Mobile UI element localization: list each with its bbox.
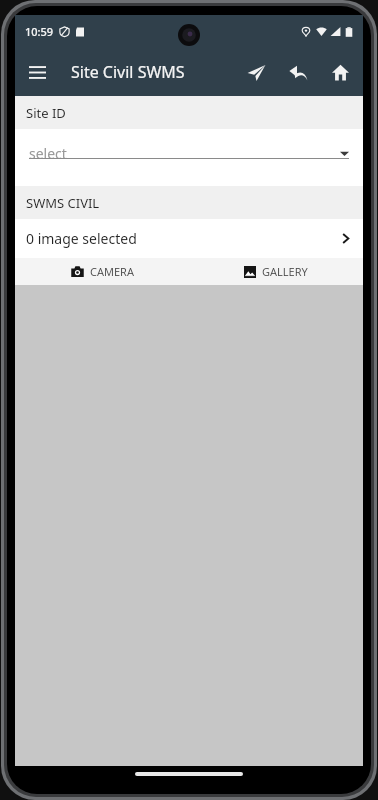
button[interactable]: Open navigation menu [15,50,59,94]
staticText: GALLERY [262,264,308,279]
staticText: 10:59 [25,24,54,39]
staticText: Site ID [26,104,66,122]
staticText: Site Civil SWMS [71,61,185,83]
button[interactable]: CAMERA [15,258,189,285]
staticText: select [29,144,67,163]
button[interactable]: Back [277,51,319,93]
staticText: 0 image selected [26,229,137,248]
staticText: CAMERA [90,264,134,279]
button[interactable]: GALLERY [189,258,363,285]
staticText: SWMS CIVIL [26,194,100,212]
button[interactable]: select [29,148,349,167]
button[interactable]: 0 image selected [15,219,363,258]
button[interactable]: Home [319,51,361,93]
button[interactable]: Send [235,51,277,93]
